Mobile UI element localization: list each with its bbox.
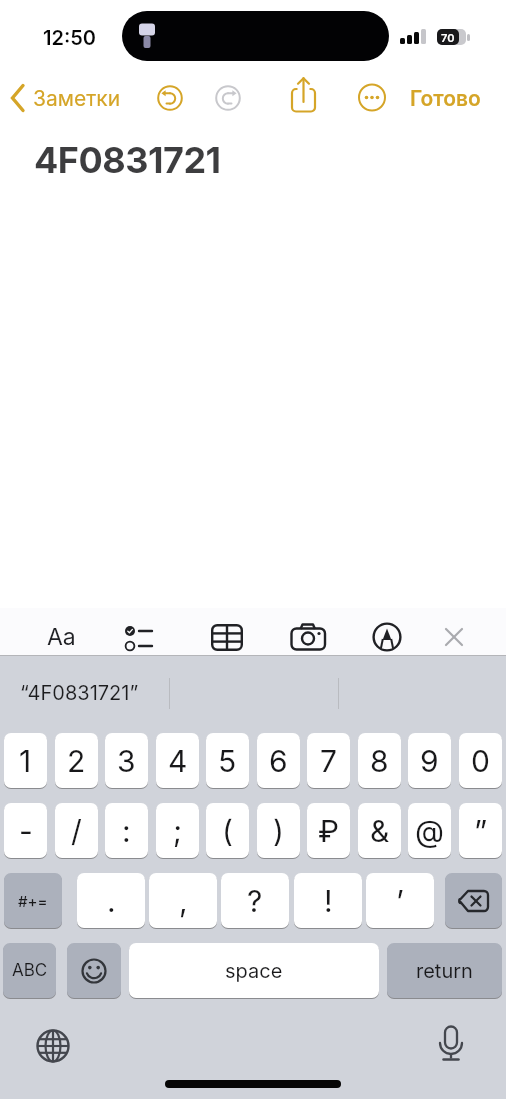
button[interactable] [6,80,132,116]
staticText: Заметки [33,86,121,111]
staticText: / [71,813,82,849]
button[interactable]: ₽ [307,803,350,858]
button[interactable] [157,85,183,111]
button[interactable]: ” [459,803,502,858]
button[interactable]: ? [221,873,289,928]
staticText: . [107,883,116,919]
button[interactable]: 2 [55,733,98,788]
button[interactable] [118,622,158,652]
button[interactable]: 5 [206,733,249,788]
button[interactable] [434,1025,468,1063]
button[interactable] [67,943,121,998]
button[interactable] [290,620,328,653]
button[interactable]: 8 [358,733,401,788]
button[interactable] [445,873,502,928]
button[interactable]: 1 [4,733,47,788]
staticText: space [225,959,283,983]
staticText: 7 [320,743,337,779]
staticText: 0 [471,743,490,779]
staticText: ( [222,813,233,849]
button[interactable] [36,1029,70,1063]
staticText: 6 [269,743,288,779]
button[interactable]: 7 [307,733,350,788]
staticText: 12:50 [43,26,97,50]
staticText: & [370,813,390,849]
button[interactable]: @ [408,803,451,858]
button[interactable]: & [358,803,401,858]
staticText: - [19,813,33,849]
button[interactable]: return [387,943,502,998]
button[interactable]: , [149,873,217,928]
staticText: #+= [18,892,48,910]
staticText: “4F0831721” [20,681,139,705]
staticText: , [179,883,188,919]
button[interactable]: - [4,803,47,858]
button[interactable]: ! [294,873,362,928]
button[interactable] [211,624,244,652]
button[interactable]: : [105,803,148,858]
staticText: ABC [12,960,48,981]
button[interactable]: . [77,873,145,928]
button[interactable]: ABC [3,943,56,998]
button[interactable]: ; [156,803,199,858]
staticText: Aa [47,623,76,651]
button[interactable]: #+= [4,873,62,928]
button[interactable]: / [55,803,98,858]
staticText: 2 [67,743,86,779]
staticText: ) [273,813,284,849]
button[interactable]: 6 [257,733,300,788]
staticText: 9 [420,743,439,779]
button[interactable]: ( [206,803,249,858]
staticText: 4F0831721 [34,138,221,176]
staticText: ₽ [318,813,340,849]
button[interactable]: ) [257,803,300,858]
staticText: Готово [410,86,481,111]
staticText: : [122,813,131,849]
staticText: return [416,959,473,983]
button[interactable] [215,85,241,111]
staticText: 4 [168,743,188,779]
staticText: ! [324,883,333,919]
button[interactable] [358,83,386,111]
staticText: 70 [441,31,455,44]
button[interactable]: 9 [408,733,451,788]
button[interactable]: ’ [366,873,434,928]
button[interactable] [405,82,495,112]
staticText: ” [474,813,488,849]
staticText: 3 [117,743,136,779]
button[interactable] [373,623,401,651]
button[interactable]: 0 [459,733,502,788]
staticText: @ [415,813,444,849]
button[interactable] [444,627,464,647]
button[interactable]: space [129,943,379,998]
staticText: 1 [19,743,32,779]
button[interactable] [288,76,320,114]
staticText: ; [173,813,183,849]
staticText: ? [247,883,263,919]
button[interactable]: 4 [156,733,199,788]
staticText: ’ [396,883,404,919]
staticText: 8 [370,743,389,779]
button[interactable]: 3 [105,733,148,788]
staticText: 5 [218,743,237,779]
